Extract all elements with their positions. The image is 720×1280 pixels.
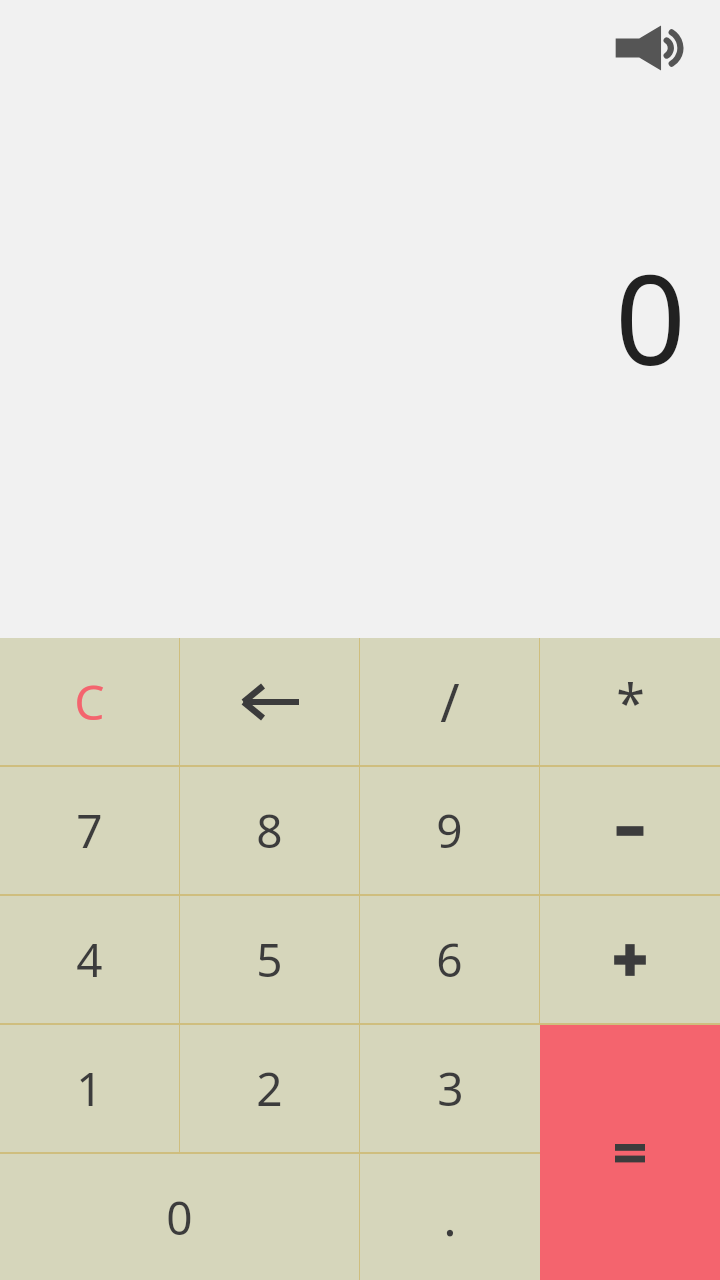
- staticText: 0: [615, 232, 686, 401]
- button[interactable]: 0: [0, 1154, 359, 1280]
- button[interactable]: 3: [360, 1025, 540, 1152]
- button[interactable]: [540, 1025, 720, 1280]
- button[interactable]: 2: [180, 1025, 359, 1152]
- button[interactable]: /: [360, 638, 539, 765]
- button[interactable]: Toggle sound: [610, 12, 702, 84]
- staticText: /: [440, 666, 460, 737]
- button[interactable]: 1: [0, 1025, 179, 1152]
- staticText: .: [443, 1183, 457, 1251]
- button[interactable]: Clear: [0, 638, 179, 765]
- staticText: 3: [437, 1057, 464, 1120]
- button[interactable]: Backspace: [180, 638, 359, 765]
- staticText: 1: [76, 1057, 103, 1120]
- staticText: 0: [166, 1186, 193, 1249]
- button[interactable]: *: [540, 638, 720, 765]
- button[interactable]: 6: [360, 896, 539, 1023]
- button[interactable]: 5: [180, 896, 359, 1023]
- button[interactable]: [540, 896, 720, 1023]
- staticText: 9: [436, 799, 463, 862]
- button[interactable]: 8: [180, 767, 359, 894]
- button[interactable]: .: [360, 1154, 540, 1280]
- button[interactable]: [540, 767, 720, 894]
- staticText: 6: [436, 928, 463, 991]
- staticText: 2: [256, 1057, 283, 1120]
- button[interactable]: 7: [0, 767, 179, 894]
- button[interactable]: 9: [360, 767, 539, 894]
- staticText: 8: [256, 799, 283, 862]
- staticText: 5: [256, 928, 283, 991]
- staticText: 4: [76, 928, 103, 991]
- staticText: *: [616, 666, 645, 737]
- button[interactable]: 4: [0, 896, 179, 1023]
- staticText: C: [74, 669, 105, 734]
- staticText: 7: [76, 799, 103, 862]
